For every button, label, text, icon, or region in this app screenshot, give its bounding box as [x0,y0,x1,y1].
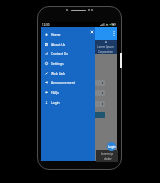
staticText: Announcement [51,80,75,84]
button[interactable] [89,80,105,86]
staticText: FAQs [51,90,59,94]
staticText: Web Link [51,71,66,75]
button[interactable]: Close drawer [41,27,95,161]
button[interactable] [89,101,105,107]
staticText: Home [51,32,61,36]
staticText: 12:30 [42,23,50,27]
staticText: Contact Us [51,51,68,55]
button[interactable]: FAQs [41,87,95,97]
button[interactable]: Login [107,142,116,151]
staticText: Lorem Ipsum [97,45,114,49]
staticText: lorem ip [101,152,114,156]
button[interactable]: Web Link [41,68,95,78]
button[interactable]: Login [41,97,95,107]
button[interactable] [89,112,105,118]
button[interactable]: Close drawer [88,28,95,35]
button[interactable]: Announcement [41,77,95,87]
button[interactable]: Settings [41,58,95,68]
button[interactable] [89,90,105,96]
button[interactable]: About Us [41,39,95,49]
staticText: About Us [51,42,66,46]
staticText: Corporation [98,50,113,54]
button[interactable]: More options [110,27,117,40]
staticText: Settings [51,61,64,65]
staticText: Login [108,145,116,149]
staticText: Login [51,100,60,104]
button[interactable]: Contact Us [41,48,95,58]
staticText: dolor [104,157,112,161]
button[interactable]: Home [41,29,95,39]
